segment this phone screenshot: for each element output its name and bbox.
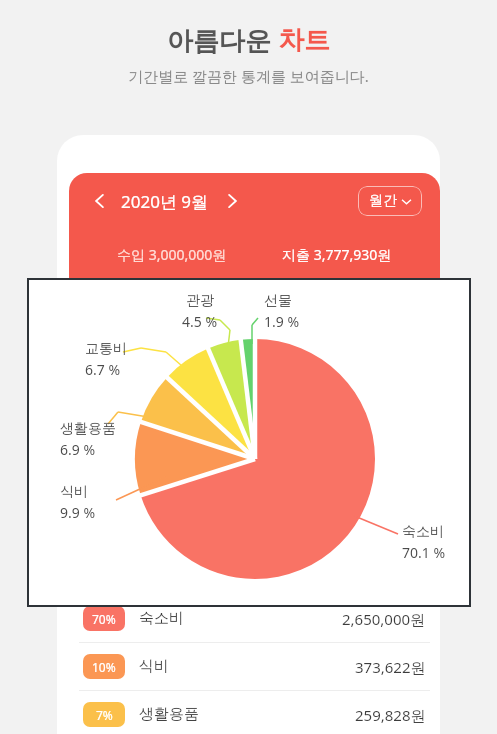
staticText: 6.7 %	[85, 360, 121, 379]
button[interactable]: Next month	[219, 188, 245, 214]
staticText: 차트	[278, 24, 330, 57]
button[interactable]: 월간	[358, 186, 422, 216]
staticText: 70%	[92, 611, 116, 627]
staticText: 6.9 %	[60, 440, 96, 459]
staticText: 월간	[369, 192, 397, 210]
button[interactable]: Previous month	[87, 188, 113, 214]
button[interactable]: 10%	[69, 643, 440, 690]
staticText: 생활용품	[60, 420, 116, 438]
staticText: 아름다운	[167, 22, 278, 58]
staticText: 4.5 %	[182, 312, 218, 331]
staticText: 생활용품	[139, 705, 199, 724]
staticText: 숙소비	[402, 523, 444, 541]
staticText: 숙소비	[139, 609, 184, 628]
staticText: 373,622원	[355, 657, 426, 677]
staticText: 9.9 %	[60, 503, 96, 522]
staticText: 259,828원	[355, 705, 426, 725]
staticText: 2,650,000원	[342, 609, 426, 629]
staticText: 선물	[264, 292, 292, 310]
staticText: 1.9 %	[264, 312, 300, 331]
button[interactable]: 7%	[69, 691, 440, 734]
staticText: 기간별로 깔끔한 통계를 보여줍니다.	[0, 66, 497, 86]
staticText: 관광	[186, 292, 214, 310]
staticText: 지출 3,777,930원	[282, 245, 392, 264]
staticText: 수입 3,000,000원	[117, 245, 227, 264]
staticText: 식비	[60, 483, 88, 501]
staticText: 2020년 9월	[121, 190, 209, 213]
staticText: 식비	[139, 657, 169, 676]
staticText: 교통비	[85, 340, 127, 358]
staticText: 70.1 %	[402, 543, 446, 562]
button[interactable]: 70%	[69, 595, 440, 642]
staticText: 10%	[92, 659, 116, 675]
staticText: 7%	[96, 707, 113, 723]
